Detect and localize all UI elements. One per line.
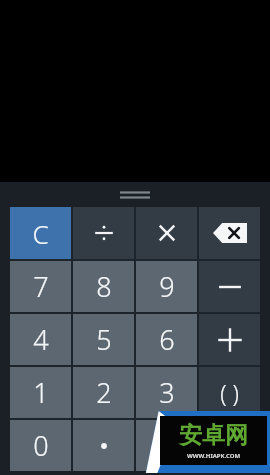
button[interactable]: Decimal point	[73, 420, 134, 471]
button[interactable]: Backspace	[199, 207, 260, 259]
staticText: 6	[159, 321, 175, 358]
staticText: 1	[33, 374, 49, 411]
staticText: 5	[96, 321, 112, 358]
staticText: 安卓网	[179, 421, 248, 450]
button[interactable]: 0	[10, 420, 71, 471]
staticText: ( )	[220, 377, 239, 408]
button[interactable]: Multiply	[136, 207, 197, 259]
button[interactable]: Equals operator	[199, 420, 260, 471]
button[interactable]: Drag handle	[0, 182, 270, 207]
staticText: 8	[96, 268, 112, 305]
staticText: 0	[33, 427, 49, 464]
staticText: 4	[33, 321, 49, 358]
staticText: 7	[33, 268, 49, 305]
button[interactable]: ( )	[199, 367, 260, 418]
button[interactable]: 9	[136, 261, 197, 312]
staticText: 9	[159, 268, 175, 305]
button[interactable]: 2	[73, 367, 134, 418]
staticText: 3	[159, 374, 175, 411]
button[interactable]: 3	[136, 367, 197, 418]
button[interactable]: 1	[10, 367, 71, 418]
button[interactable]: Minus	[199, 261, 260, 312]
staticText: 2	[96, 374, 112, 411]
button[interactable]: 7	[10, 261, 71, 312]
button[interactable]: 4	[10, 314, 71, 365]
button[interactable]: 8	[73, 261, 134, 312]
button[interactable]: Divide	[73, 207, 134, 259]
staticText: WWW.HIAPK.COM	[187, 452, 241, 460]
button[interactable]: 6	[136, 314, 197, 365]
staticText: C	[32, 216, 49, 251]
button[interactable]: Plus	[199, 314, 260, 365]
button[interactable]: C	[10, 207, 71, 259]
button[interactable]: 5	[73, 314, 134, 365]
button[interactable]: Equals	[136, 420, 197, 471]
